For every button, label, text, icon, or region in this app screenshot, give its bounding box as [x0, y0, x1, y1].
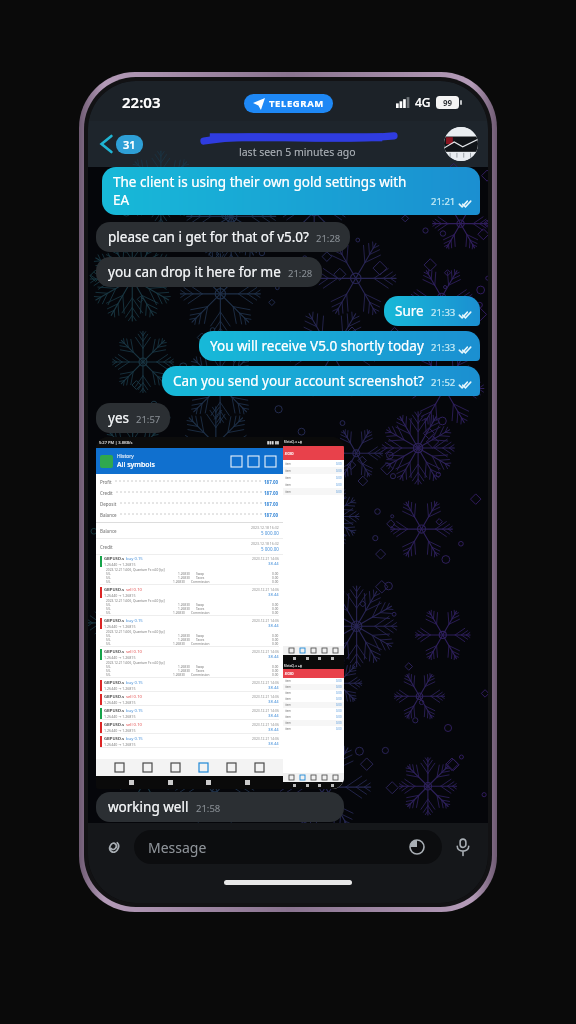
button[interactable]: you can drop it here for me	[96, 257, 322, 287]
staticText: Commission	[191, 611, 210, 615]
staticText: 2023.12.21 14:06	[252, 556, 279, 561]
button[interactable]: Can you send your account screenshot?	[162, 366, 480, 396]
button[interactable]: Attach	[98, 832, 128, 862]
staticText: item	[285, 469, 291, 473]
staticText: 0.00	[336, 709, 342, 713]
staticText: Message	[148, 838, 207, 857]
staticText: 0.00	[336, 476, 342, 480]
staticText: GBPUSD.s	[104, 649, 126, 655]
staticText: Swap	[196, 603, 205, 607]
staticText: 0.00	[336, 691, 342, 695]
staticText: 2023.12.21 14:06	[252, 736, 279, 741]
staticText: 8 030	[283, 671, 294, 676]
staticText: 21:58	[196, 802, 221, 815]
staticText: All symbols	[117, 460, 155, 470]
staticText: Swap	[196, 665, 205, 669]
staticText: 1.26440 → 1.26815	[104, 728, 136, 733]
staticText: Deposit	[100, 501, 117, 507]
staticText: S/L	[106, 665, 111, 669]
staticText: GBPUSD.s	[104, 618, 126, 624]
staticText: 38.44	[268, 561, 279, 567]
staticText: 38.44	[268, 685, 279, 691]
button[interactable]: The client is using their own gold setti…	[102, 167, 480, 215]
staticText: please can i get for that of v5.0?	[108, 228, 309, 246]
staticText: 2023.12.21 14:06	[252, 618, 279, 623]
staticText: MetaQ..s ▴ ▮	[283, 440, 303, 444]
button[interactable]: Profile photo	[444, 127, 478, 161]
staticText: Taxes	[196, 576, 205, 580]
staticText: 0.00	[336, 703, 342, 707]
staticText: 21:33	[431, 341, 456, 354]
staticText: item	[285, 709, 291, 713]
staticText: 38.44	[268, 741, 279, 747]
staticText: 21:28	[316, 232, 341, 245]
staticText: 2023.12.21 14:06	[252, 587, 279, 592]
staticText: 2023.12.21 14:06	[252, 680, 279, 685]
staticText: item	[285, 691, 291, 695]
staticText: 0.00	[272, 576, 279, 580]
staticText: 0.00	[336, 490, 342, 494]
staticText: 0.00	[336, 697, 342, 701]
staticText: item	[285, 476, 291, 480]
button[interactable]: Message	[134, 830, 442, 864]
staticText: ▮▮▮ ▮▮	[267, 440, 280, 445]
button[interactable]: Schedule message	[406, 836, 428, 858]
staticText: 2023.12.21 14:06	[252, 708, 279, 713]
staticText: Sure	[395, 302, 424, 320]
staticText: sell 0.10	[126, 587, 142, 593]
staticText: 38.44	[268, 592, 279, 598]
staticText: 1.26830	[178, 669, 190, 673]
staticText: item	[285, 697, 291, 701]
staticText: 1.26830	[173, 673, 185, 677]
staticText: 1.26440 → 1.26815	[104, 742, 136, 747]
staticText: 187.00	[264, 501, 279, 507]
button[interactable]: Voice message	[448, 832, 478, 862]
staticText: Profit	[100, 479, 112, 485]
button[interactable]: yes	[96, 403, 170, 433]
staticText: Commission	[191, 642, 210, 646]
staticText: 38.44	[268, 713, 279, 719]
staticText: 1.26830	[178, 603, 190, 607]
button[interactable]: Back	[98, 130, 145, 158]
staticText: 2023.12.21 14:06, Quantum Fx v4.0 [tp]	[106, 599, 165, 603]
button[interactable]: Trading history screenshot	[96, 437, 344, 789]
staticText: 1.26830	[178, 634, 190, 638]
staticText: 0.00	[336, 685, 342, 689]
staticText: The client is using their own gold setti…	[113, 173, 424, 209]
staticText: 0.00	[336, 721, 342, 725]
staticText: Swap	[196, 572, 205, 576]
staticText: 0.00	[272, 642, 279, 646]
button[interactable]: You will receive V5.0 shortly today	[199, 331, 480, 361]
staticText: Taxes	[196, 669, 205, 673]
staticText: you can drop it here for me	[108, 263, 281, 281]
staticText: 5 000.00	[261, 546, 279, 552]
button[interactable]: please can i get for that of v5.0?	[96, 222, 350, 252]
staticText: 21:21	[431, 195, 456, 208]
staticText: S/L	[106, 611, 111, 615]
staticText: Taxes	[196, 607, 205, 611]
staticText: 0.00	[336, 679, 342, 683]
staticText: 0.00	[336, 462, 342, 466]
staticText: S/L	[106, 572, 111, 576]
staticText: You will receive V5.0 shortly today	[210, 337, 424, 355]
staticText: Balance	[100, 528, 117, 534]
button[interactable]: TELEGRAM	[244, 94, 333, 113]
staticText: item	[285, 685, 291, 689]
staticText: GBPUSD.s	[104, 680, 126, 686]
staticText: item	[285, 703, 291, 707]
staticText: GBPUSD.s	[104, 587, 126, 593]
staticText: 2023.12.21 14:06, Quantum Fx v4.0 [tp]	[106, 661, 165, 665]
staticText: Balance	[100, 512, 117, 518]
staticText: 1.26440 → 1.26815	[104, 714, 136, 719]
button[interactable]: working well	[96, 792, 344, 822]
staticText: 0.00	[272, 580, 279, 584]
staticText: buy 0.15	[126, 680, 143, 686]
button[interactable]: last seen 5 minutes ago	[145, 130, 444, 159]
staticText: 21:57	[136, 413, 161, 426]
staticText: yes	[108, 409, 129, 427]
staticText: 2023.12.21 14:06, Quantum Fx v4.0 [tp]	[106, 568, 165, 572]
button[interactable]: Sure	[384, 296, 480, 326]
staticText: 1.26440 → 1.26815	[104, 700, 136, 705]
staticText: S/L	[106, 638, 111, 642]
staticText: 2023.12.18 16:32	[251, 541, 279, 546]
